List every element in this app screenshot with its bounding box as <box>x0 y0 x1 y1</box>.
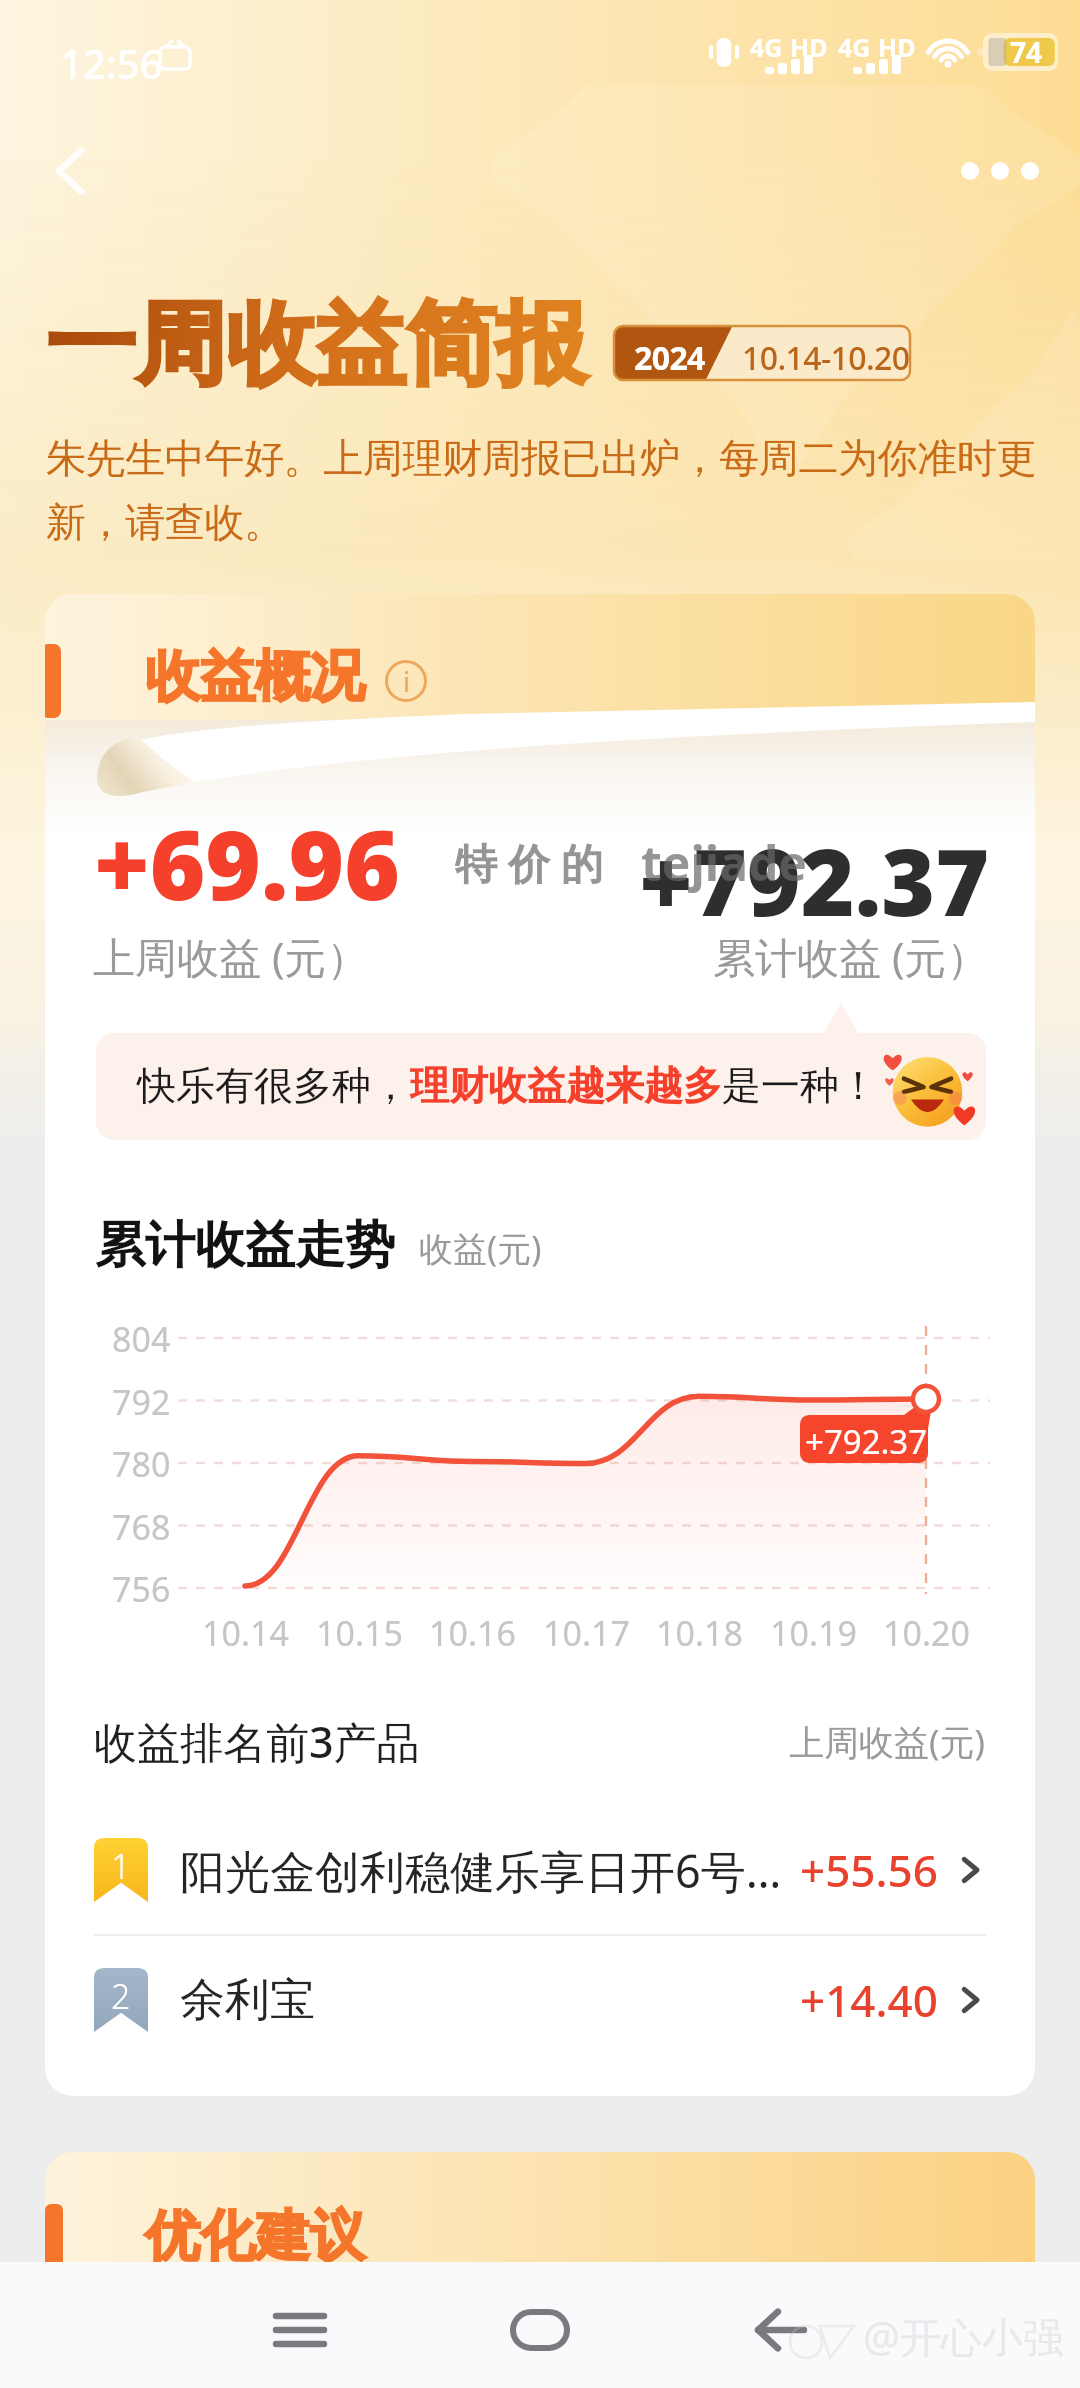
staticText: 4G <box>750 30 783 64</box>
button[interactable]: Back <box>28 128 114 214</box>
button[interactable]: Home <box>480 2270 600 2388</box>
button[interactable]: 2 <box>45 1936 1035 2064</box>
staticText: 是一种！ <box>722 1061 878 1110</box>
staticText: 阳光金创利稳健乐享日开6号… <box>180 1840 800 1901</box>
staticText: 4G <box>838 30 871 64</box>
staticText: HD <box>878 30 916 64</box>
staticText: 快乐有很多种， <box>137 1061 410 1110</box>
staticText: 累计收益走势 <box>95 1214 395 1277</box>
staticText: 收益(元) <box>419 1225 542 1271</box>
staticText: 10.20 <box>883 1610 970 1656</box>
staticText: @开心小强 <box>863 2308 1064 2364</box>
staticText: +69.96 <box>94 798 400 927</box>
staticText: tejiade <box>641 830 807 895</box>
staticText: 1 <box>111 1843 131 1889</box>
button[interactable]: Back <box>720 2270 840 2388</box>
staticText: 10.19 <box>770 1610 857 1656</box>
staticText: 10.15 <box>316 1610 403 1656</box>
staticText: +792.37 <box>805 1419 928 1464</box>
staticText: i <box>403 663 410 700</box>
staticText: +14.40 <box>800 1970 938 2030</box>
staticText: 792 <box>112 1379 171 1425</box>
staticText: 780 <box>112 1441 171 1487</box>
staticText: 累计收益 (元） <box>713 928 989 985</box>
staticText: +792.37 <box>639 818 990 943</box>
staticText: 余利宝 <box>180 1972 800 2029</box>
staticText: 上周收益 (元） <box>93 928 369 985</box>
button[interactable]: 1 <box>45 1806 1035 1934</box>
staticText: 12:56 <box>60 36 163 90</box>
staticText: 特 价 的 <box>455 834 603 891</box>
button[interactable]: More options <box>950 128 1050 214</box>
staticText: 10.18 <box>656 1610 743 1656</box>
staticText: 优化建议 <box>145 2202 365 2271</box>
staticText: 804 <box>112 1316 171 1362</box>
staticText: 理财收益越来越多 <box>410 1061 722 1110</box>
staticText: 10.14 <box>202 1610 289 1656</box>
staticText: 收益概况 <box>145 642 365 711</box>
staticText: 上周收益(元) <box>789 1718 986 1766</box>
staticText: +55.56 <box>800 1840 938 1900</box>
staticText: 74 <box>1010 33 1043 71</box>
button[interactable]: Recent apps <box>240 2270 360 2388</box>
staticText: 756 <box>112 1566 171 1612</box>
staticText: 朱先生中午好。上周理财周报已出炉，每周二为你准时更新，请查收。 <box>46 433 1038 548</box>
staticText: 收益排名前3产品 <box>94 1712 420 1771</box>
staticText: 2024 <box>634 336 705 380</box>
staticText: 10.17 <box>543 1610 630 1656</box>
staticText: 一周收益简报 <box>46 288 586 401</box>
staticText: 768 <box>112 1504 171 1550</box>
staticText: 10.14-10.20 <box>742 336 910 380</box>
staticText: 2 <box>111 1973 131 2019</box>
staticText: HD <box>790 30 828 64</box>
staticText: 10.16 <box>429 1610 516 1656</box>
